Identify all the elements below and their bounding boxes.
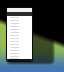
- button[interactable]: [7, 25, 32, 28]
- button[interactable]: [7, 28, 32, 31]
- button[interactable]: [7, 34, 32, 37]
- button[interactable]: [7, 19, 32, 22]
- button[interactable]: [7, 43, 32, 46]
- button[interactable]: [7, 22, 32, 25]
- button[interactable]: [7, 46, 32, 49]
- button[interactable]: [7, 37, 32, 40]
- button[interactable]: [7, 52, 32, 55]
- button[interactable]: [7, 40, 32, 43]
- button[interactable]: [7, 16, 32, 19]
- button[interactable]: [7, 55, 32, 58]
- button[interactable]: [7, 58, 32, 59]
- button[interactable]: [7, 31, 32, 34]
- button[interactable]: [7, 49, 32, 52]
